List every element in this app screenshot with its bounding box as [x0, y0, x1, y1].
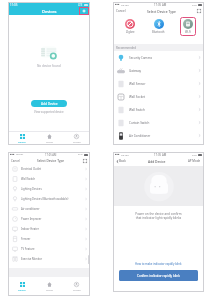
button[interactable]: Power Improver — [8, 214, 90, 224]
staticText: ▪▪▪ — [115, 153, 120, 156]
staticText: 97% — [192, 153, 197, 156]
button[interactable]: Wall Sensor — [113, 77, 204, 90]
button[interactable]: Exercise Monitor — [8, 254, 90, 264]
staticText: Devices — [42, 9, 57, 14]
button[interactable]: Wi-Fi — [183, 19, 193, 34]
staticText: Scene — [46, 140, 53, 143]
staticText: ▪▪▪ — [10, 153, 15, 156]
button[interactable]: Air Conditioner — [113, 129, 204, 142]
staticText: Gateway — [129, 69, 142, 73]
other: Scene — [47, 282, 52, 287]
staticText: Cancel — [116, 9, 126, 13]
staticText: ▪▪▪ — [115, 3, 120, 6]
button[interactable]: Add Device — [31, 100, 67, 107]
staticText: Add Device — [41, 102, 58, 106]
staticText: Back — [119, 159, 126, 163]
button[interactable]: Scan QR code — [197, 9, 201, 13]
other: Device — [20, 282, 25, 287]
staticText: TV Feature — [21, 247, 35, 251]
staticText: Select Device Type — [147, 9, 176, 13]
staticText: Profile — [73, 140, 81, 143]
button[interactable]: Freezer — [8, 234, 90, 244]
staticText: Device — [18, 140, 26, 143]
other: Scene — [47, 134, 52, 139]
staticText: carrier — [121, 153, 129, 156]
button[interactable]: How to make indicator rapidly blink — [113, 262, 204, 266]
staticText: Air Conditioner — [129, 134, 151, 138]
staticText: Select Device Type — [37, 159, 65, 163]
staticText: Scene — [46, 288, 53, 291]
staticText: 17:05 AM — [154, 3, 167, 7]
button[interactable]: Security Camera — [113, 51, 204, 64]
button[interactable]: Back — [116, 159, 126, 163]
staticText: carrier — [16, 153, 24, 156]
button[interactable]: Cancel — [116, 9, 126, 13]
staticText: 97% — [192, 3, 197, 6]
button[interactable]: Curtain Switch — [113, 116, 204, 129]
button[interactable]: Cancel — [11, 159, 20, 163]
staticText: Curtain Switch — [129, 121, 150, 125]
staticText: Security Camera — [129, 56, 152, 60]
staticText: Wi-Fi — [185, 30, 192, 34]
button[interactable]: Indoor Heater — [8, 224, 90, 234]
staticText: Wall Switch — [129, 108, 145, 112]
staticText: Bluetooth — [152, 30, 165, 34]
staticText: Exercise Monitor — [21, 257, 43, 261]
staticText: Indoor Heater — [21, 227, 39, 231]
button[interactable]: Device — [8, 277, 36, 296]
other: Device — [20, 134, 25, 139]
button[interactable]: Scene — [36, 132, 63, 145]
staticText: LTE — [78, 3, 83, 7]
staticText: View supported device — [34, 110, 64, 114]
other: Profile — [74, 134, 79, 139]
staticText: Confirm indicator rapidly blink — [137, 274, 180, 278]
staticText: 17:05 AM — [154, 153, 167, 157]
staticText: How to make indicator rapidly blink — [135, 262, 182, 266]
staticText: Lighting Devices (Bluetooth available) — [21, 197, 69, 201]
button[interactable]: Electrical Outlet — [8, 164, 90, 174]
button[interactable]: Device — [8, 132, 36, 145]
button[interactable]: Lighting Devices (Bluetooth available) — [8, 194, 90, 204]
staticText: Electrical Outlet — [21, 167, 41, 171]
button[interactable]: Scene — [36, 277, 63, 296]
button[interactable]: Profile — [63, 132, 90, 145]
staticText: Freezer — [21, 237, 31, 241]
button[interactable]: Profile — [63, 277, 90, 296]
button[interactable]: Confirm indicator rapidly blink — [119, 270, 198, 281]
button[interactable]: Air conditioner — [8, 204, 90, 214]
button[interactable]: Scan QR code — [83, 159, 87, 163]
button[interactable]: Lighting Devices — [8, 184, 90, 194]
button[interactable]: Wall Socket — [113, 90, 204, 103]
button[interactable]: Wall Switch — [113, 103, 204, 116]
button[interactable]: View supported device — [34, 110, 64, 114]
staticText: Air conditioner — [21, 207, 40, 211]
staticText: Profile — [73, 288, 81, 291]
button[interactable]: AP Mode — [188, 159, 201, 163]
staticText: 11:05 — [10, 3, 18, 7]
button[interactable]: Add device — [79, 7, 89, 15]
staticText: Zigbee — [126, 30, 135, 34]
button[interactable]: Bluetooth — [152, 19, 165, 34]
staticText: Wall Switch — [21, 177, 36, 181]
button[interactable]: TV Feature — [8, 244, 90, 254]
button[interactable]: Gateway — [113, 64, 204, 77]
staticText: Power on the device and confirm that ind… — [118, 212, 199, 220]
staticText: Lighting Devices — [21, 187, 42, 191]
staticText: Add Device — [148, 159, 166, 163]
other: Profile — [74, 282, 79, 287]
staticText: 97% — [78, 153, 83, 156]
staticText: No device found — [37, 64, 61, 68]
button[interactable]: Wall Switch — [8, 174, 90, 184]
staticText: Device — [18, 288, 26, 291]
staticText: Wall Sensor — [129, 82, 146, 86]
staticText: AP Mode — [188, 159, 201, 163]
staticText: 17:05 AM — [45, 153, 57, 157]
staticText: Wall Socket — [129, 95, 146, 99]
staticText: carrier — [121, 3, 129, 6]
staticText: Cancel — [11, 159, 20, 163]
staticText: Power Improver — [21, 217, 42, 221]
button[interactable]: Zigbee — [125, 19, 135, 34]
staticText: Recommended — [116, 46, 136, 50]
